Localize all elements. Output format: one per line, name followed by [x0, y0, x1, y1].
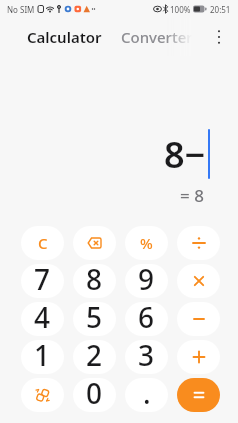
- staticText: 5: [86, 302, 103, 332]
- button[interactable]: [177, 378, 220, 412]
- staticText: 7: [34, 264, 51, 294]
- button[interactable]: [177, 340, 220, 374]
- staticText: 2: [86, 340, 103, 370]
- staticText: No SIM: [7, 4, 35, 15]
- button[interactable]: 4: [21, 302, 64, 336]
- button[interactable]: [21, 378, 64, 412]
- button[interactable]: [177, 264, 220, 298]
- button[interactable]: [73, 226, 116, 260]
- staticText: 3: [138, 340, 155, 370]
- staticText: 6: [138, 302, 155, 332]
- staticText: %: [140, 233, 153, 253]
- button[interactable]: 6: [125, 302, 168, 336]
- staticText: 0: [86, 378, 103, 408]
- button[interactable]: 5: [73, 302, 116, 336]
- button[interactable]: 8: [73, 264, 116, 298]
- button[interactable]: 7: [21, 264, 64, 298]
- staticText: 8−: [164, 130, 206, 179]
- staticText: 100%: [170, 4, 191, 15]
- staticText: 20:51: [210, 4, 231, 15]
- staticText: Calculator: [27, 27, 102, 47]
- button[interactable]: 2: [73, 340, 116, 374]
- button[interactable]: 3: [125, 340, 168, 374]
- staticText: 9: [138, 264, 155, 294]
- button[interactable]: 0: [73, 378, 116, 412]
- staticText: 8: [86, 264, 103, 294]
- staticText: 1: [34, 340, 51, 370]
- button[interactable]: Converter: [121, 27, 193, 47]
- button[interactable]: .: [125, 378, 168, 412]
- staticText: Converter: [121, 27, 193, 47]
- button[interactable]: [177, 302, 220, 336]
- staticText: = 8: [180, 184, 204, 206]
- button[interactable]: 9: [125, 264, 168, 298]
- button[interactable]: Calculator: [27, 27, 102, 47]
- staticText: 4: [34, 302, 51, 332]
- staticText: .: [143, 378, 151, 408]
- button[interactable]: 1: [21, 340, 64, 374]
- button[interactable]: C: [21, 226, 64, 260]
- staticText: C: [38, 233, 48, 253]
- button[interactable]: [177, 226, 220, 260]
- button[interactable]: [214, 27, 224, 47]
- button[interactable]: %: [125, 226, 168, 260]
